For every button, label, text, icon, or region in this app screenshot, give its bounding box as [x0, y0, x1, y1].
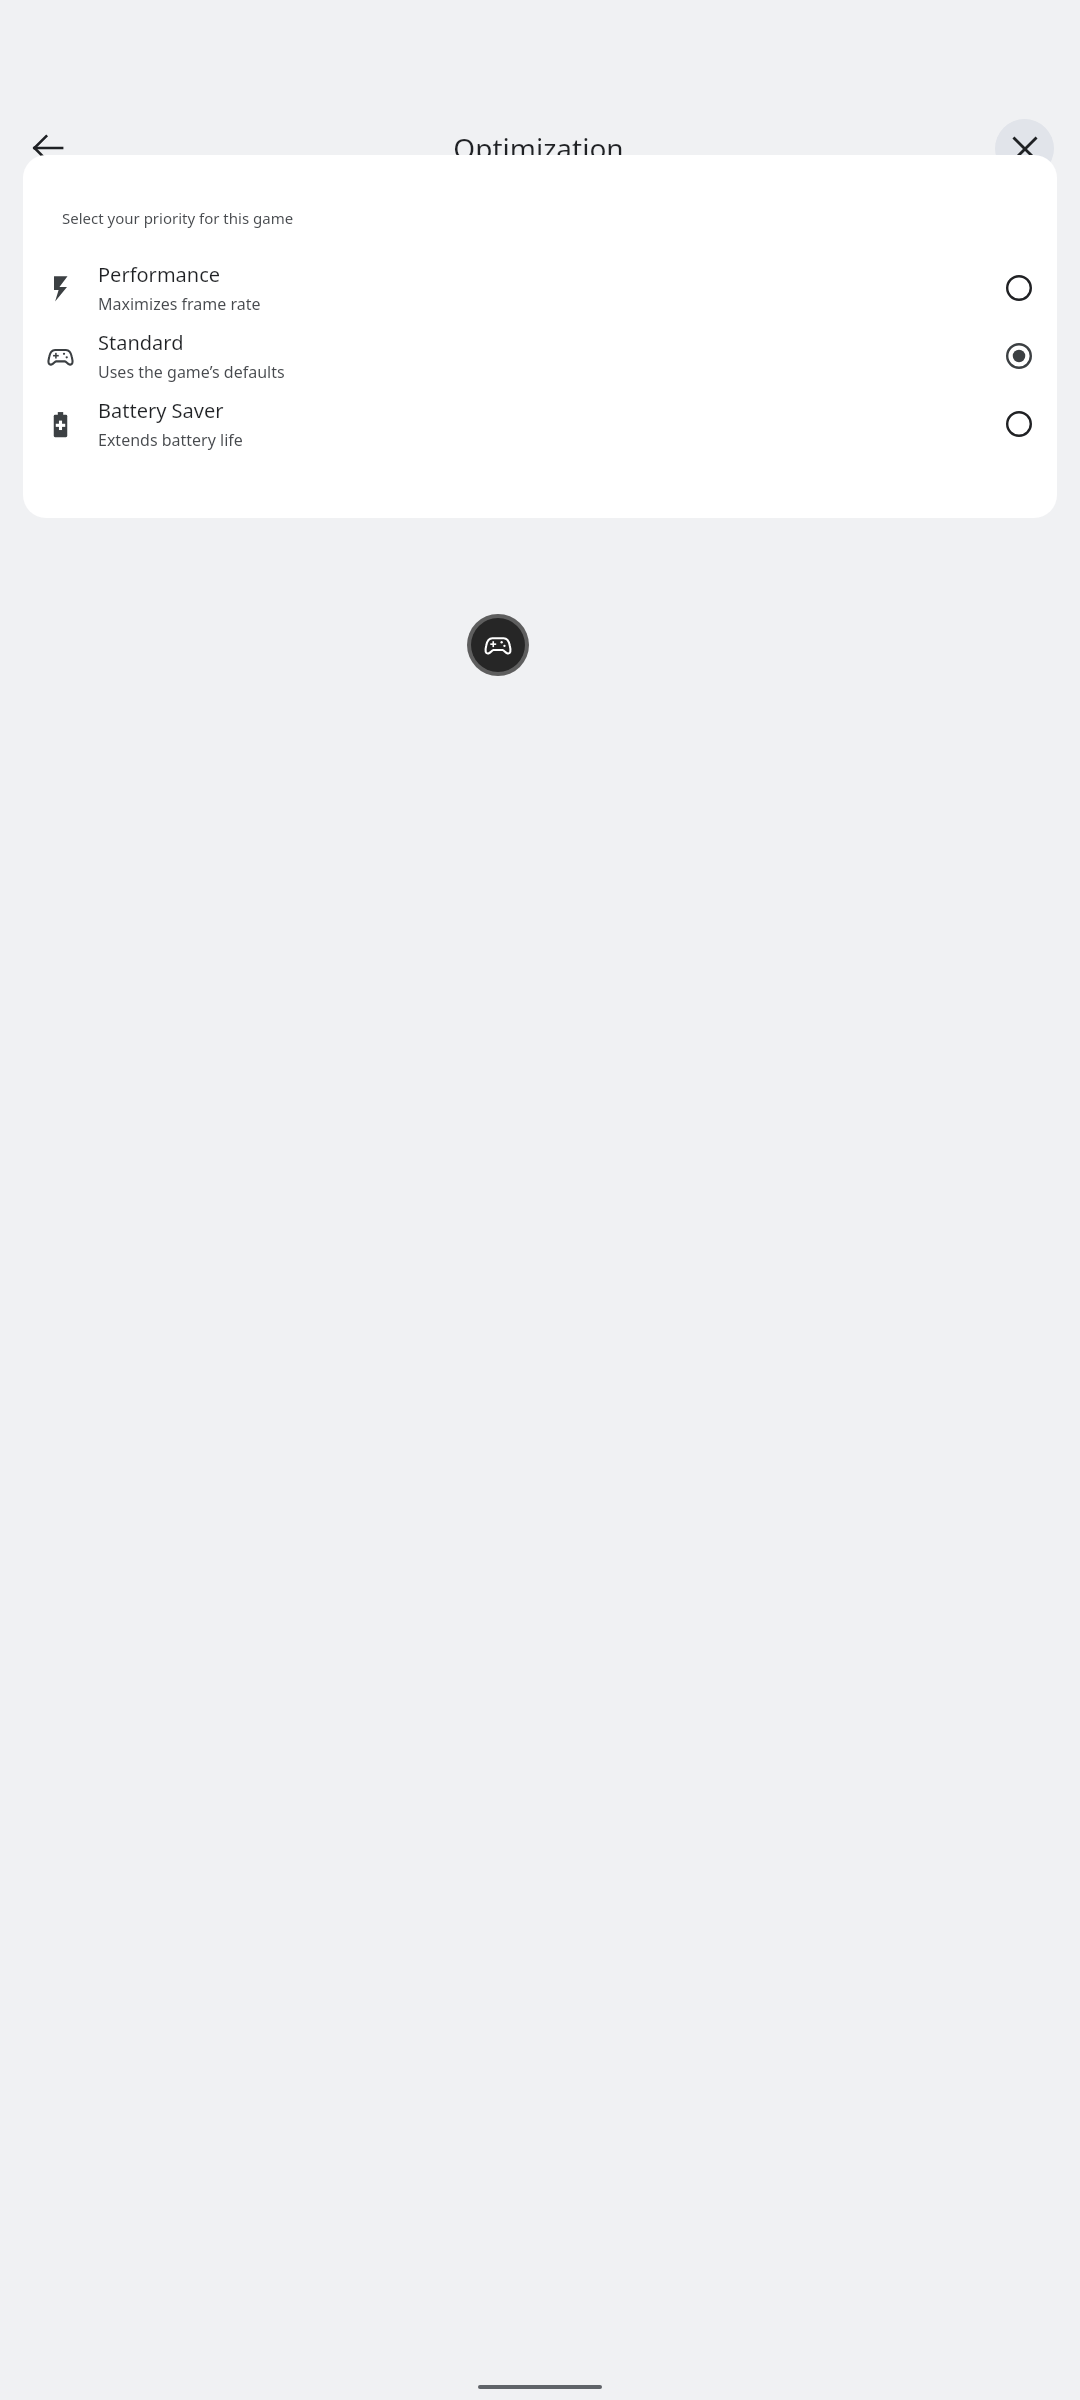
button[interactable]: Close: [995, 119, 1054, 178]
staticText: Extends battery life: [98, 429, 243, 451]
staticText: Battery Saver: [98, 397, 224, 424]
staticText: Uses the game’s defaults: [98, 361, 285, 383]
button[interactable]: Standard: [23, 322, 1057, 390]
staticText: Performance: [98, 261, 221, 288]
staticText: Maximizes frame rate: [98, 293, 261, 315]
button[interactable]: Performance: [23, 254, 1057, 322]
staticText: Standard: [98, 329, 184, 356]
staticText: Optimization: [453, 129, 624, 167]
staticText: Select your priority for this game: [62, 208, 294, 228]
button[interactable]: Battery Saver: [23, 390, 1057, 458]
button[interactable]: Game dashboard: [467, 614, 529, 676]
button[interactable]: Back: [22, 122, 74, 174]
